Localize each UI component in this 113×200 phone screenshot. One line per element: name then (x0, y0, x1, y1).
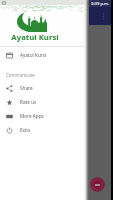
button[interactable]: Exits (0, 123, 86, 137)
button[interactable]: More Apps (0, 109, 86, 123)
staticText: Communicate (6, 72, 35, 78)
button[interactable]: Audio player (90, 177, 105, 192)
staticText: Ayatul Kursi (10, 32, 60, 43)
staticText: Share (20, 85, 33, 91)
button[interactable]: More options (99, 12, 108, 21)
staticText: Exits (20, 127, 31, 133)
staticText: 3:39 p.m. (91, 1, 110, 7)
button[interactable]: Ayatul Kursi (0, 48, 86, 62)
staticText: More Apps (20, 113, 44, 119)
staticText: Rate us (20, 99, 37, 105)
button[interactable]: Share (0, 81, 86, 95)
button[interactable]: Rate us (0, 95, 86, 109)
staticText: Ayatul Kursi (20, 52, 47, 58)
